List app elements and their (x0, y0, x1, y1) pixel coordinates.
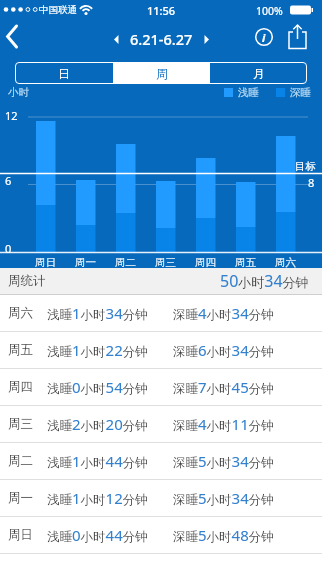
staticText: 周三 (8, 416, 33, 432)
staticText: 周六 (275, 256, 296, 269)
staticText: 周 (156, 66, 168, 81)
staticText: 6.21-6.27 (130, 29, 193, 49)
staticText: 浅睡1小时22分钟 (47, 340, 148, 360)
staticText: 浅睡0小时54分钟 (47, 377, 148, 397)
button[interactable]: 周一 (0, 480, 322, 517)
staticText: 深睡 (290, 86, 311, 99)
staticText: 深睡4小时11分钟 (173, 414, 274, 434)
staticText: 周五 (235, 256, 256, 269)
staticText: 周三 (155, 256, 176, 269)
staticText: 中国联通 (39, 4, 77, 16)
staticText: 8 (308, 175, 315, 190)
staticText: 11:56 (0, 3, 322, 18)
staticText: 深睡4小时34分钟 (173, 303, 274, 323)
staticText: 深睡5小时34分钟 (173, 451, 274, 471)
button[interactable]: 周日 (0, 517, 322, 554)
staticText: 浅睡0小时44分钟 (47, 525, 148, 545)
button[interactable]: 周 (113, 62, 210, 84)
staticText: 周五 (8, 342, 33, 358)
staticText: 6 (5, 173, 12, 188)
staticText: 周一 (75, 256, 96, 269)
button[interactable] (0, 20, 34, 54)
button[interactable]: 月 (210, 62, 307, 84)
staticText: 周统计 (8, 273, 46, 289)
staticText: 月 (253, 66, 265, 81)
staticText: 100% (256, 4, 283, 18)
button[interactable]: 日 (15, 62, 113, 84)
staticText: 浅睡1小时44分钟 (47, 451, 148, 471)
staticText: 周一 (8, 490, 33, 506)
staticText: 周六 (8, 305, 33, 321)
button[interactable]: 周六 (0, 295, 322, 332)
staticText: i (262, 30, 266, 45)
button[interactable]: 周四 (0, 369, 322, 406)
staticText: 周四 (195, 256, 216, 269)
button[interactable]: 周三 (0, 406, 322, 443)
staticText: 50小时34分钟 (220, 270, 309, 292)
staticText: 浅睡2小时20分钟 (47, 414, 148, 434)
button[interactable]: 6.21-6.27 (114, 29, 209, 49)
staticText: 小时 (8, 86, 29, 99)
staticText: 浅睡 (238, 86, 259, 99)
staticText: 周日 (8, 527, 33, 543)
staticText: 深睡5小时48分钟 (173, 525, 274, 545)
staticText: 0 (5, 241, 12, 256)
staticText: 深睡7小时45分钟 (173, 377, 274, 397)
staticText: 周四 (8, 379, 33, 395)
staticText: 深睡6小时34分钟 (173, 340, 274, 360)
staticText: 目标 (295, 160, 316, 173)
staticText: 周二 (115, 256, 136, 269)
button[interactable] (283, 21, 313, 51)
button[interactable]: 周二 (0, 443, 322, 480)
staticText: 周二 (8, 453, 33, 469)
button[interactable]: i (250, 23, 278, 51)
staticText: 深睡5小时34分钟 (173, 488, 274, 508)
staticText: 12 (5, 108, 18, 123)
button[interactable]: 周五 (0, 332, 322, 369)
staticText: 浅睡1小时12分钟 (47, 488, 148, 508)
staticText: 日 (58, 66, 70, 81)
staticText: 浅睡1小时34分钟 (47, 303, 148, 323)
staticText: 周日 (35, 256, 56, 269)
